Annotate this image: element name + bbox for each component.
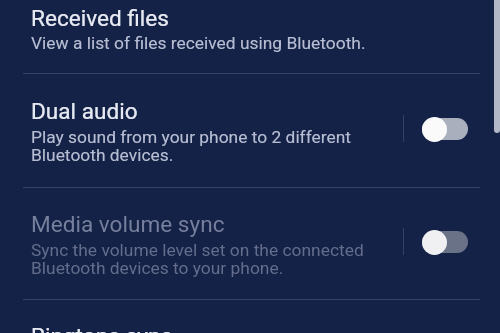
staticText: Dual audio (31, 98, 138, 124)
staticText: View a list of files received using Blue… (31, 33, 366, 53)
button[interactable]: Received files (0, 0, 500, 73)
staticText: Received files (31, 5, 169, 31)
button[interactable]: Media volume sync (0, 187, 500, 300)
staticText: Media volume sync (31, 211, 225, 237)
button[interactable]: Toggle, off (422, 229, 468, 255)
button[interactable]: Ringtone sync (0, 299, 500, 333)
button[interactable]: Dual audio (0, 74, 500, 187)
staticText: Play sound from your phone to 2 differen… (31, 127, 351, 165)
staticText: Sync the volume level set on the connect… (31, 240, 364, 278)
staticText: Ringtone sync (31, 323, 173, 333)
button[interactable]: Toggle, off (422, 116, 468, 142)
